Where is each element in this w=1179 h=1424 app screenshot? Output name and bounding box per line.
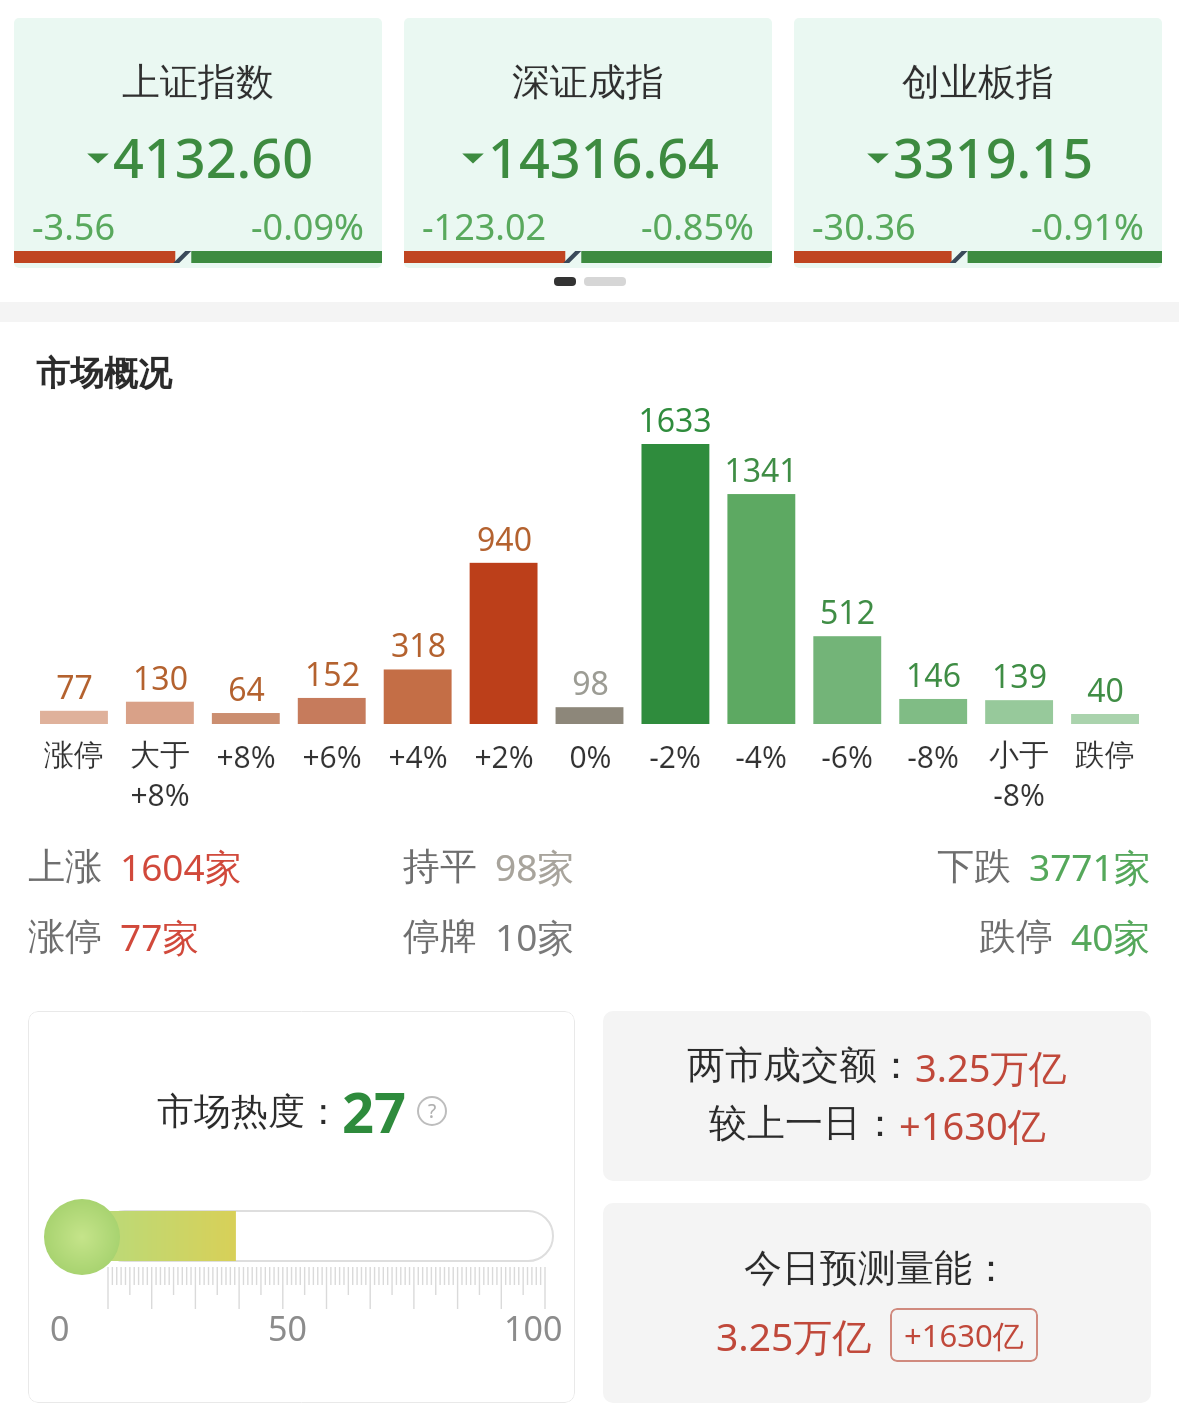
staticText: -3.56 [32,202,116,251]
staticText: 77家 [120,911,200,962]
staticText: ? [428,1098,437,1124]
staticText: 64 [228,667,265,711]
staticText: 512 [820,590,875,634]
staticText: +8% [216,736,276,777]
staticText: 跌停 [1075,736,1135,774]
button[interactable]: 创业板指 [794,18,1162,268]
staticText: +8% [130,774,190,815]
staticText: 1604家 [120,841,242,892]
staticText: 涨停 [44,736,104,774]
button[interactable]: Help [417,1096,447,1126]
staticText: +1630亿 [899,1099,1046,1151]
staticText: 130 [133,656,188,700]
staticText: 50 [268,1305,307,1351]
staticText: 0 [50,1305,70,1351]
staticText: 152 [305,652,360,696]
staticText: 940 [477,517,532,561]
staticText: -0.91% [1031,202,1144,251]
staticText: 318 [391,623,446,667]
staticText: 14316.64 [488,120,719,194]
staticText: 139 [992,654,1047,698]
button[interactable]: 两市成交额： [603,1011,1151,1181]
staticText: 较上一日： [709,1099,899,1147]
staticText: 1341 [724,448,798,492]
staticText: 停牌 [403,913,477,960]
staticText: -0.85% [641,202,754,251]
staticText: -0.09% [251,202,364,251]
staticText: -8% [993,774,1045,815]
button[interactable]: 市场热度： [28,1011,575,1403]
button[interactable]: 深证成指 [404,18,772,268]
staticText: 跌停 [979,913,1053,960]
staticText: 两市成交额： [687,1041,915,1089]
button[interactable]: 上证指数 [14,18,382,268]
button[interactable]: Page 2 [584,277,626,286]
button[interactable]: Page 1 [554,277,576,286]
staticText: -6% [821,736,873,777]
staticText: 市场概况 [36,352,172,395]
staticText: 上证指数 [122,58,274,106]
staticText: 77 [56,665,93,709]
staticText: 涨停 [28,913,102,960]
staticText: +6% [302,736,362,777]
staticText: 上涨 [28,843,102,890]
staticText: 98家 [495,841,575,892]
staticText: 10家 [495,911,575,962]
staticText: 3771家 [1029,841,1151,892]
staticText: +2% [474,736,534,777]
staticText: -2% [649,736,701,777]
staticText: 4132.60 [113,120,314,194]
staticText: 3.25万亿 [915,1041,1067,1093]
staticText: 大于 [130,736,190,774]
staticText: 27 [342,1073,407,1149]
staticText: +4% [388,736,448,777]
staticText: 1633 [638,398,712,442]
staticText: -4% [735,736,787,777]
staticText: 0% [569,736,612,777]
staticText: 下跌 [937,843,1011,890]
staticText: 3319.15 [893,120,1094,194]
staticText: 市场热度： [157,1088,342,1135]
staticText: 40家 [1071,911,1151,962]
staticText: 98 [572,661,609,705]
staticText: -123.02 [422,202,547,251]
button[interactable]: 今日预测量能： [603,1203,1151,1403]
staticText: 创业板指 [902,58,1054,106]
staticText: 3.25万亿 [716,1309,872,1362]
staticText: 今日预测量能： [744,1244,1010,1292]
staticText: -8% [907,736,959,777]
staticText: 深证成指 [512,58,664,106]
staticText: 持平 [403,843,477,890]
staticText: +1630亿 [904,1314,1024,1356]
staticText: 40 [1087,668,1124,712]
staticText: -30.36 [812,202,916,251]
staticText: 146 [906,653,961,697]
staticText: 小于 [989,736,1049,774]
staticText: 100 [504,1305,563,1351]
